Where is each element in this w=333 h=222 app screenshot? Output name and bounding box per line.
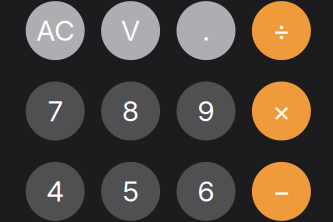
button[interactable]: Minus <box>252 162 311 221</box>
button[interactable]: 7 <box>26 81 85 140</box>
button[interactable]: Divide <box>252 1 311 60</box>
staticText: 8 <box>122 94 139 128</box>
button[interactable]: All clear <box>26 1 85 60</box>
button[interactable]: Multiply <box>252 81 311 140</box>
button[interactable]: Decimal point <box>176 1 235 60</box>
staticText: × <box>272 94 290 128</box>
button[interactable]: 4 <box>26 162 85 221</box>
staticText: . <box>202 14 209 48</box>
button[interactable]: 6 <box>176 162 235 221</box>
button[interactable]: 9 <box>176 81 235 140</box>
staticText: − <box>272 174 290 208</box>
button[interactable]: 8 <box>101 81 160 140</box>
staticText: 5 <box>123 174 139 208</box>
staticText: ÷ <box>272 14 290 48</box>
staticText: 4 <box>46 174 64 208</box>
staticText: 7 <box>48 94 63 128</box>
staticText: 6 <box>197 174 214 208</box>
button[interactable]: V <box>101 1 160 60</box>
staticText: AC <box>36 14 74 48</box>
staticText: 9 <box>197 94 214 128</box>
button[interactable]: 5 <box>101 162 160 221</box>
staticText: V <box>121 14 140 48</box>
